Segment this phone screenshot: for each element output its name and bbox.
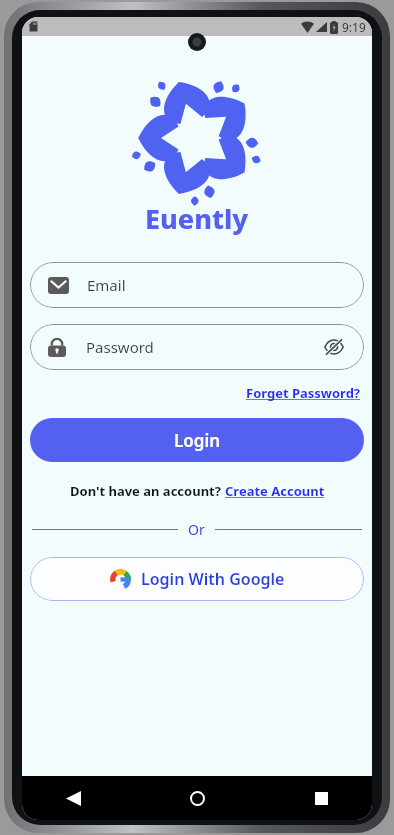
staticText: Create Account <box>225 482 325 500</box>
button[interactable]: Login With Google <box>30 557 364 601</box>
staticText: 9:19 <box>342 19 366 35</box>
staticText: Don't have an account? <box>70 482 225 500</box>
button[interactable]: Don't have an account? <box>70 482 325 500</box>
staticText: Forget Password? <box>246 384 361 402</box>
staticText: Password <box>86 337 322 357</box>
button[interactable]: Show password <box>322 335 346 359</box>
button[interactable]: Recent apps <box>304 781 338 815</box>
staticText: Login With Google <box>141 568 285 590</box>
staticText: Or <box>188 520 205 539</box>
button[interactable]: Forget Password? <box>244 382 363 404</box>
button[interactable]: Email <box>30 262 364 308</box>
staticText: Euently <box>145 200 249 237</box>
staticText: Login <box>174 429 221 452</box>
button[interactable]: Back <box>56 781 90 815</box>
button[interactable]: Login <box>30 418 364 462</box>
staticText: Email <box>87 275 126 295</box>
button[interactable]: Password <box>30 324 364 370</box>
button[interactable]: Home <box>180 781 214 815</box>
